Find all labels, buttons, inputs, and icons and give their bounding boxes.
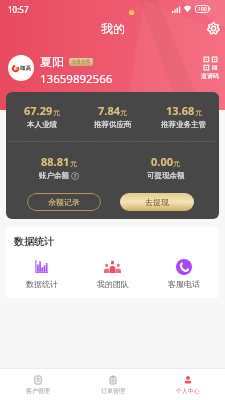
staticText: 13659892566: [40, 71, 113, 87]
staticText: 个人中心: [176, 387, 200, 395]
staticText: 账户余额: [39, 171, 69, 180]
staticText: 元: [53, 108, 60, 117]
button[interactable]: 订单管理: [75, 369, 150, 400]
staticText: 本人业绩: [27, 120, 57, 129]
staticText: 推荐业务主管: [161, 120, 206, 129]
staticText: 88.81: [41, 154, 70, 169]
staticText: 数据统计: [26, 279, 58, 289]
button[interactable]: 去提现: [120, 193, 194, 211]
staticText: 夏阳: [40, 54, 64, 69]
staticText: 7.84: [98, 103, 120, 118]
staticText: 100: [198, 6, 207, 13]
staticText: 推荐供应商: [94, 120, 132, 129]
staticText: 元: [173, 159, 180, 168]
button[interactable]: 客服电话: [148, 258, 219, 289]
staticText: 10:57: [8, 4, 29, 15]
staticText: 余额记录: [48, 197, 80, 207]
staticText: 元: [195, 108, 202, 117]
staticText: 订单管理: [101, 387, 125, 395]
staticText: 可提现余额: [147, 171, 185, 180]
button[interactable]: 个人中心: [150, 369, 225, 400]
staticText: 数据统计: [14, 235, 54, 248]
button[interactable]: 数据统计: [6, 258, 77, 289]
staticText: 颐高: [20, 65, 31, 72]
button[interactable]: 余额记录: [27, 193, 101, 211]
staticText: 元: [120, 108, 127, 117]
staticText: 客服电话: [168, 279, 200, 289]
staticText: 我的: [101, 21, 125, 36]
staticText: 邀请码: [201, 72, 219, 80]
button[interactable]: 邀请码: [198, 57, 222, 80]
staticText: 67.29: [24, 103, 53, 118]
staticText: 客户管理: [26, 387, 50, 395]
staticText: 0.00: [151, 154, 173, 169]
staticText: 去提现: [145, 197, 169, 207]
staticText: 元: [70, 159, 77, 168]
staticText: ?: [74, 173, 77, 180]
staticText: 我的团队: [97, 279, 129, 289]
button[interactable]: 客户管理: [0, 369, 75, 400]
staticText: 13.68: [166, 103, 195, 118]
staticText: 业务主管: [72, 59, 90, 65]
button[interactable]: 我的团队: [77, 258, 148, 289]
button[interactable]: Settings: [206, 21, 220, 35]
